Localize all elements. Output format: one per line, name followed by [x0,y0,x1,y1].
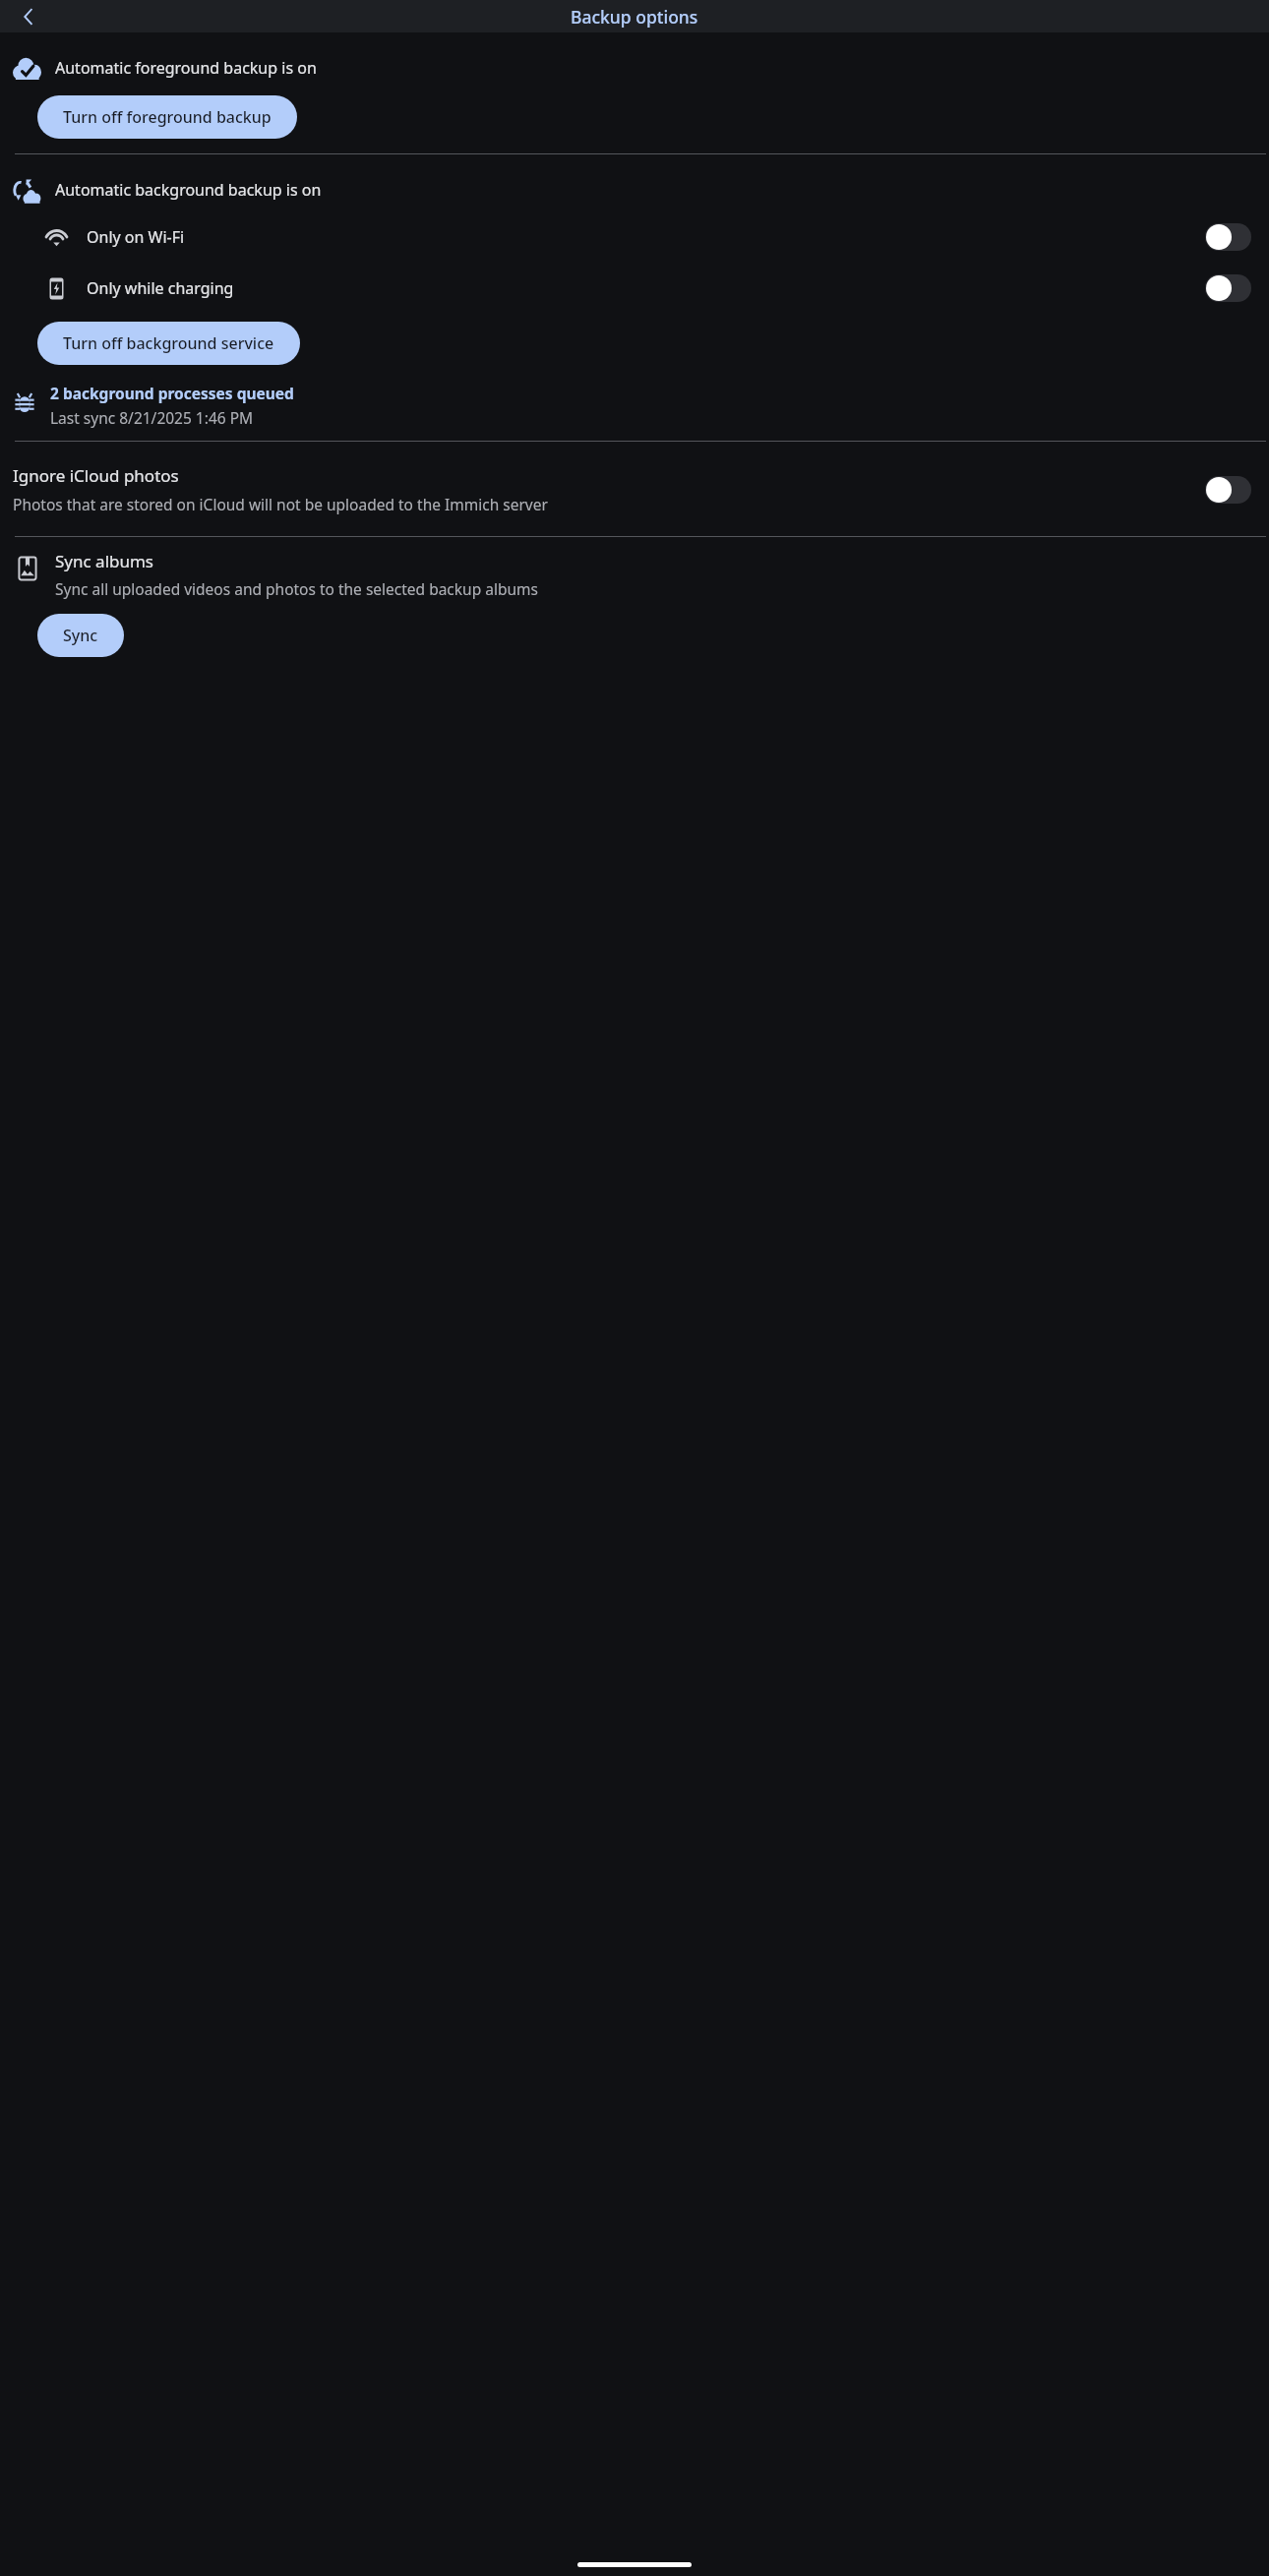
staticText: Sync [63,625,98,646]
staticText: Only while charging [87,277,234,299]
staticText: Backup options [571,5,698,29]
button[interactable]: Back [5,0,52,32]
button[interactable]: Ignore iCloud photos [13,464,1251,514]
staticText: Photos that are stored on iCloud will no… [13,494,548,514]
button[interactable]: Only while charging [42,266,1251,311]
button[interactable]: Turn off background service [37,322,300,365]
button[interactable]: Sync [37,614,124,657]
button[interactable]: Turn off foreground backup [37,95,297,139]
staticText: Ignore iCloud photos [13,464,179,487]
staticText: Last sync 8/21/2025 1:46 PM [50,407,254,428]
staticText: Sync albums [55,550,154,572]
staticText: Automatic background backup is on [55,179,322,201]
staticText: Turn off foreground backup [63,106,272,128]
staticText: Turn off background service [63,332,274,354]
button[interactable]: Only on Wi-Fi [42,214,1251,260]
staticText: Only on Wi-Fi [87,226,185,248]
staticText: Automatic foreground backup is on [55,57,317,79]
staticText: 2 background processes queued [50,383,294,403]
staticText: Sync all uploaded videos and photos to t… [55,578,538,599]
